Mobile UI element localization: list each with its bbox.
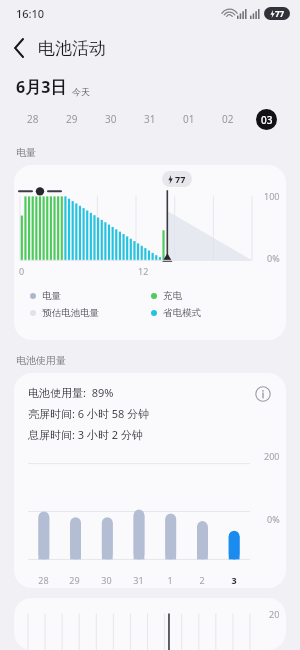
staticText: 电量	[42, 290, 61, 302]
staticText: 03	[261, 113, 273, 127]
staticText: 02	[222, 112, 234, 126]
staticText: 29	[66, 112, 78, 126]
staticText: 200	[264, 450, 280, 462]
staticText: 29	[69, 574, 80, 586]
button[interactable]: Info	[250, 381, 276, 407]
staticText: 2	[199, 574, 205, 586]
staticText: 电量	[16, 146, 36, 159]
staticText: 省电模式	[163, 307, 201, 319]
button[interactable]: 31	[130, 102, 169, 136]
button[interactable]: 20	[14, 598, 286, 650]
button[interactable]: 03	[247, 102, 286, 136]
staticText: 16:10	[16, 6, 45, 21]
staticText: 电池使用量	[16, 354, 66, 367]
staticText: 电池使用量: 89%	[28, 385, 114, 400]
staticText: 30	[101, 574, 112, 586]
staticText: 3	[231, 574, 237, 586]
staticText: 0%	[267, 513, 280, 525]
button[interactable]: Back	[0, 29, 38, 67]
button[interactable]: 29	[52, 102, 91, 136]
button[interactable]: 28	[14, 102, 52, 136]
button[interactable]: 30	[91, 102, 130, 136]
staticText: 充电	[163, 290, 182, 302]
staticText: 0%	[267, 252, 280, 264]
staticText: 31	[133, 574, 144, 586]
staticText: 31	[144, 112, 156, 126]
staticText: 77	[175, 173, 186, 185]
staticText: 6月3日	[16, 76, 67, 98]
staticText: 0	[19, 265, 25, 277]
staticText: 77	[275, 8, 285, 19]
staticText: 01	[183, 112, 195, 126]
staticText: 28	[27, 112, 39, 126]
staticText: 亮屏时间: 6 小时 58 分钟	[28, 406, 150, 421]
staticText: 28	[38, 574, 49, 586]
staticText: 30	[105, 112, 117, 126]
staticText: 12	[138, 265, 149, 277]
button[interactable]: 02	[208, 102, 247, 136]
button[interactable]: 100	[14, 165, 286, 340]
staticText: 息屏时间: 3 小时 2 分钟	[28, 427, 143, 442]
staticText: 100	[264, 190, 280, 202]
staticText: 预估电池电量	[42, 307, 99, 319]
button[interactable]: 01	[169, 102, 208, 136]
staticText: 1	[167, 574, 173, 586]
button[interactable]: 电池使用量: 89%	[14, 373, 286, 588]
staticText: 20	[269, 608, 280, 620]
staticText: 电池活动	[38, 38, 106, 59]
staticText: 今天	[72, 86, 90, 97]
